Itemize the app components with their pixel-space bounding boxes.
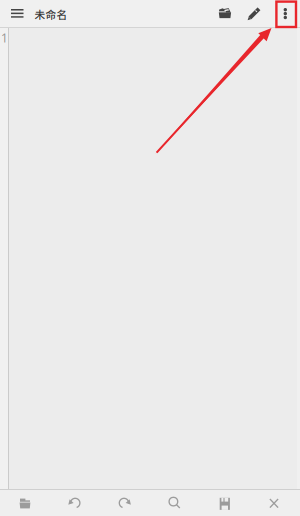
- button[interactable]: Save: [200, 490, 250, 516]
- button[interactable]: Close: [250, 490, 300, 516]
- button[interactable]: Undo: [50, 490, 100, 516]
- button[interactable]: Files: [0, 490, 50, 516]
- button[interactable]: Edit: [244, 0, 270, 27]
- button[interactable]: Open: [218, 0, 244, 27]
- staticText: 1: [1, 30, 8, 46]
- button[interactable]: Search: [150, 490, 200, 516]
- button[interactable]: Menu: [0, 0, 34, 27]
- staticText: 未命名: [34, 6, 67, 22]
- button[interactable]: More options: [270, 0, 296, 27]
- button[interactable]: Redo: [100, 490, 150, 516]
